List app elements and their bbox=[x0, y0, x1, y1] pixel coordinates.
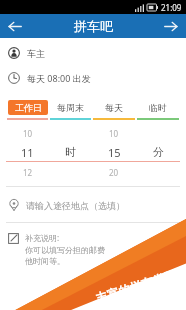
staticText: 21:09 bbox=[161, 2, 182, 13]
button[interactable]: 每周末 bbox=[49, 99, 92, 116]
button[interactable]: 每天 08:00 出发 bbox=[0, 69, 186, 87]
staticText: 每天 08:00 出发 bbox=[27, 72, 91, 84]
staticText: 补充说明: bbox=[25, 232, 60, 243]
staticText: 拼车吧 bbox=[74, 18, 113, 34]
staticText: 请输入途径地点（选填） bbox=[26, 200, 125, 211]
staticText: 10 bbox=[23, 128, 33, 139]
staticText: 15 bbox=[108, 145, 121, 160]
staticText: 11 bbox=[21, 145, 34, 160]
button[interactable]: 请输入途径地点（选填） bbox=[0, 197, 186, 213]
staticText: 时 bbox=[65, 145, 76, 159]
staticText: 10 bbox=[109, 128, 119, 139]
button[interactable]: 车主 bbox=[0, 44, 186, 62]
staticText: 每天 bbox=[105, 102, 123, 113]
button[interactable]: 每天 bbox=[92, 99, 136, 116]
staticText: 工作日 bbox=[15, 102, 42, 113]
staticText: 你可以填写分担的邮费 bbox=[25, 245, 105, 255]
button[interactable]: 补充说明: bbox=[0, 232, 186, 266]
staticText: 丰富的拼车类型 bbox=[94, 267, 178, 306]
staticText: 车主 bbox=[27, 48, 45, 59]
button[interactable]: Forward bbox=[156, 14, 186, 38]
staticText: 临时 bbox=[149, 102, 167, 113]
staticText: 20 bbox=[109, 167, 119, 178]
staticText: 12 bbox=[23, 167, 33, 178]
button[interactable]: 工作日 bbox=[6, 99, 49, 116]
staticText: 他时间等。 bbox=[25, 256, 65, 266]
button[interactable]: Back bbox=[0, 14, 30, 38]
button[interactable]: 临时 bbox=[136, 99, 180, 116]
staticText: 每周末 bbox=[57, 102, 84, 113]
staticText: 分 bbox=[153, 145, 164, 159]
